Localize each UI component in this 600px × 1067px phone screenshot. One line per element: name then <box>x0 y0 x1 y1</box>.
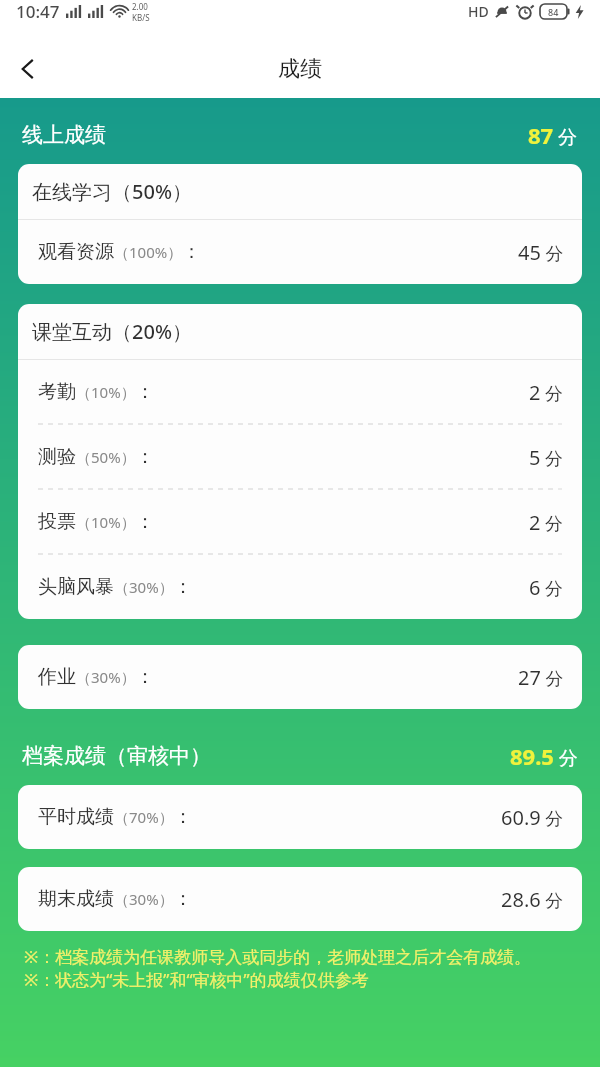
staticText: 平时成绩（70%）： <box>38 805 193 829</box>
staticText: 考勤（10%）： <box>38 380 155 404</box>
staticText: 作业（30%）： <box>38 665 155 689</box>
staticText: 27 分 <box>518 664 564 691</box>
staticText: 89.5 分 <box>510 741 578 771</box>
staticText: 5 分 <box>529 444 564 471</box>
staticText: 2 分 <box>529 379 564 406</box>
button[interactable]: Back <box>0 41 56 97</box>
staticText: 10:47 <box>16 0 60 23</box>
staticText: ※：档案成绩为任课教师导入或同步的，老师处理之后才会有成绩。 <box>24 945 532 968</box>
button[interactable]: 课堂互动（20%） <box>18 304 582 359</box>
staticText: 测验（50%）： <box>38 445 155 469</box>
staticText: 档案成绩（审核中） <box>22 743 211 769</box>
staticText: 成绩 <box>278 55 322 83</box>
staticText: 在线学习（50%） <box>32 178 192 205</box>
staticText: 期末成绩（30%）： <box>38 887 193 911</box>
staticText: 课堂互动（20%） <box>32 318 192 345</box>
staticText: 84 <box>548 6 559 18</box>
button[interactable]: 测验（50%）： <box>18 425 582 489</box>
button[interactable]: 在线学习（50%） <box>18 164 582 219</box>
staticText: 观看资源（100%）： <box>38 240 202 264</box>
button[interactable]: 考勤（10%）： <box>18 360 582 424</box>
staticText: 头脑风暴（30%）： <box>38 575 193 599</box>
staticText: 60.9 分 <box>501 804 564 831</box>
staticText: 28.6 分 <box>501 886 564 913</box>
button[interactable]: 期末成绩（30%）： <box>18 867 582 931</box>
staticText: 2 分 <box>529 509 564 536</box>
staticText: 87 分 <box>528 120 578 150</box>
staticText: HD <box>468 2 489 21</box>
staticText: 线上成绩 <box>22 122 106 148</box>
button[interactable]: 投票（10%）： <box>18 490 582 554</box>
staticText: 投票（10%）： <box>38 510 155 534</box>
staticText: ※：状态为“未上报”和“审核中”的成绩仅供参考 <box>24 968 369 991</box>
button[interactable]: 作业（30%）： <box>18 645 582 709</box>
staticText: 45 分 <box>518 239 564 266</box>
button[interactable]: 头脑风暴（30%）： <box>18 555 582 619</box>
staticText: 2.00 <box>132 1 148 12</box>
button[interactable]: 观看资源（100%）： <box>18 220 582 284</box>
staticText: 6 分 <box>529 574 564 601</box>
button[interactable]: 平时成绩（70%）： <box>18 785 582 849</box>
staticText: KB/S <box>132 12 150 23</box>
